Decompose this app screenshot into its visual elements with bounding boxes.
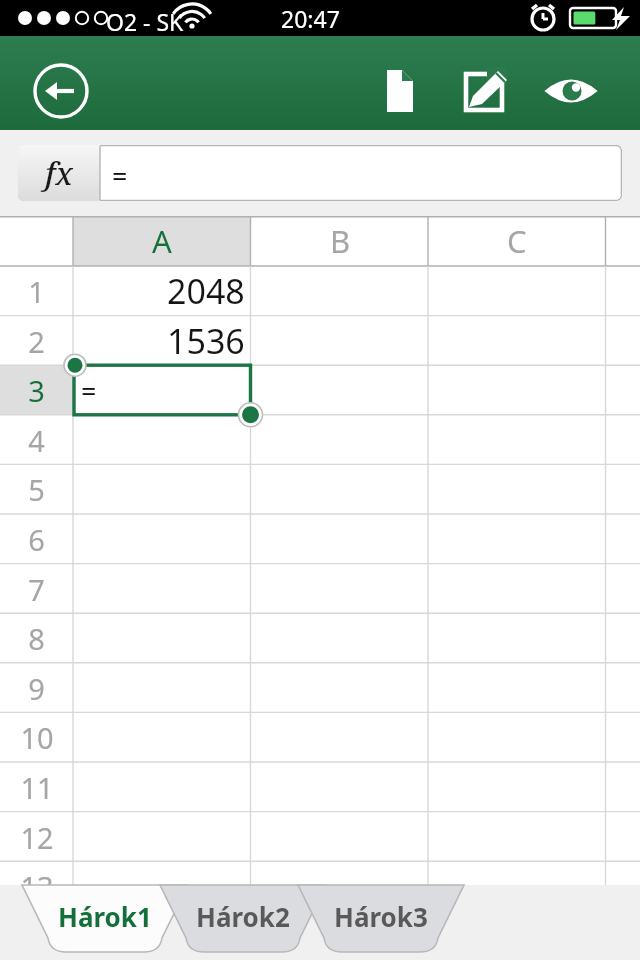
button[interactable]: 7 — [0, 564, 73, 614]
staticText: Hárok3 — [334, 899, 428, 934]
staticText: 1536 — [167, 318, 245, 364]
staticText: 8 — [28, 619, 45, 658]
staticText: Hárok2 — [196, 899, 290, 934]
button[interactable]: Hárok2 — [160, 885, 326, 960]
staticText: O2 - SK — [106, 6, 184, 37]
button[interactable]: 3 — [0, 365, 73, 415]
button[interactable]: 6 — [0, 514, 73, 564]
button[interactable]: = — [112, 157, 128, 194]
button[interactable]: Hárok1 — [22, 885, 188, 960]
staticText: 14 — [20, 917, 54, 956]
button[interactable]: 10 — [0, 712, 73, 762]
staticText: fx — [45, 152, 74, 194]
button[interactable]: New file — [370, 62, 428, 120]
staticText: = — [81, 372, 97, 409]
button[interactable]: Edit — [455, 62, 513, 120]
staticText: C — [507, 220, 527, 262]
staticText: 12 — [20, 818, 54, 857]
button[interactable]: 14 — [0, 911, 73, 960]
staticText: 5 — [28, 470, 45, 509]
button[interactable]: Hárok3 — [298, 885, 464, 960]
staticText: 13 — [20, 867, 54, 906]
staticText: B — [330, 220, 351, 262]
staticText: 11 — [20, 768, 54, 807]
staticText: 7 — [28, 570, 45, 609]
button[interactable]: 9 — [0, 663, 73, 713]
button[interactable]: View — [542, 62, 600, 120]
staticText: Hárok1 — [58, 899, 152, 934]
staticText: 10 — [20, 718, 54, 757]
button[interactable]: 5 — [0, 464, 73, 514]
button[interactable]: 1536 — [73, 316, 245, 366]
staticText: 2048 — [167, 268, 245, 314]
staticText: 2 — [28, 322, 45, 361]
staticText: 20:47 — [281, 3, 340, 34]
button[interactable]: 8 — [0, 613, 73, 663]
staticText: 9 — [28, 669, 45, 708]
button[interactable]: A — [73, 216, 251, 266]
staticText: 4 — [28, 421, 45, 460]
button[interactable]: Insert function — [18, 145, 100, 201]
staticText: 1 — [28, 272, 45, 311]
button[interactable]: 11 — [0, 762, 73, 812]
button[interactable]: 13 — [0, 861, 73, 911]
button[interactable]: C — [428, 216, 606, 266]
staticText: 3 — [28, 371, 45, 410]
button[interactable]: 2048 — [73, 266, 245, 316]
button[interactable]: 2 — [0, 316, 73, 366]
button[interactable]: B — [251, 216, 429, 266]
staticText: A — [152, 220, 172, 262]
button[interactable]: Back — [30, 60, 92, 122]
staticText: 6 — [28, 520, 45, 559]
button[interactable]: 1 — [0, 266, 73, 316]
button[interactable]: 4 — [0, 415, 73, 465]
button[interactable]: 12 — [0, 812, 73, 862]
